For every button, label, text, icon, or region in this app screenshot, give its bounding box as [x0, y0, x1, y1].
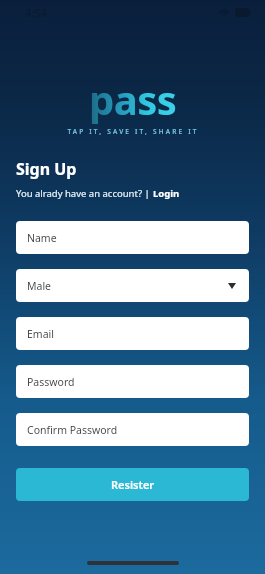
staticText: TAP IT, SAVE IT, SHARE IT	[67, 127, 199, 136]
button[interactable]: Resister	[16, 468, 249, 501]
staticText: Name	[27, 231, 57, 245]
staticText: pass	[89, 72, 177, 126]
other: Select gender	[228, 283, 236, 289]
staticText: Resister	[111, 477, 155, 492]
button[interactable]: Password	[16, 365, 249, 398]
button[interactable]: Email	[16, 317, 249, 350]
staticText: Sign Up	[16, 158, 77, 180]
staticText: Password	[27, 375, 75, 389]
staticText: Email	[27, 327, 54, 341]
staticText: Login	[153, 187, 180, 200]
staticText: 4:54	[25, 5, 47, 20]
staticText: You alrady have an account? |	[16, 187, 153, 200]
staticText: Confirm Password	[27, 423, 118, 437]
button[interactable]: Male	[16, 269, 249, 302]
button[interactable]: Name	[16, 221, 249, 254]
button[interactable]: Login	[153, 187, 180, 200]
staticText: Male	[27, 279, 52, 293]
button[interactable]: Confirm Password	[16, 413, 249, 446]
